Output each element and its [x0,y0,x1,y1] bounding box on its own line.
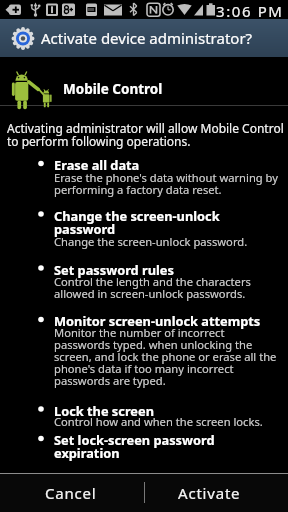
staticText: Monitor screen-unlock attempts [54,312,261,329]
staticText: Activate device administrator? [41,28,253,48]
staticText: Lock the screen [54,402,154,419]
staticText: password [54,220,116,237]
staticText: Change the screen-unlock password. [54,234,248,249]
staticText: Activate [178,483,241,503]
staticText: passwords typed. when unlocking the [54,337,253,352]
staticText: phone's data if too many incorrect [54,361,234,376]
staticText: Cancel [45,483,97,503]
staticText: to perform following operations. [7,133,191,149]
button[interactable]: Cancel [0,475,144,512]
staticText: Monitor the number of incorrect [54,325,225,340]
staticText: 3:06 PM [216,1,284,21]
staticText: Erase all data [54,156,140,173]
button[interactable]: Activate [144,475,288,512]
staticText: screen, and lock the phone or erase all … [54,349,277,364]
staticText: passwords are typed. [54,373,166,388]
staticText: Set password rules [54,261,174,278]
staticText: Erase the phone's data without warning b… [54,170,278,185]
staticText: Control how and when the screen locks. [54,414,263,429]
staticText: allowed in screen-unlock passwords. [54,286,246,301]
staticText: Control the length and the characters [54,274,251,289]
staticText: Change the screen-unlock [54,207,220,224]
staticText: Mobile Control [63,80,163,98]
staticText: Set lock-screen password [54,431,215,448]
staticText: performing a factory data reset. [54,182,222,197]
staticText: expiration [54,444,120,461]
staticText: Activating administrator will allow Mobi… [7,120,284,136]
